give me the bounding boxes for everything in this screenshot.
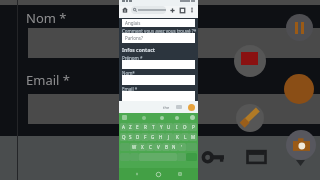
button[interactable]: Screenshot bbox=[286, 130, 316, 160]
button[interactable]: A bbox=[120, 123, 127, 131]
staticText: D bbox=[136, 134, 140, 140]
staticText: S bbox=[129, 134, 132, 140]
button[interactable]: Payment card bbox=[247, 150, 266, 164]
button[interactable]: P bbox=[189, 123, 197, 131]
button[interactable]: K bbox=[173, 133, 181, 141]
button[interactable]: U bbox=[165, 123, 173, 131]
button[interactable]: Parlons? bbox=[122, 33, 195, 43]
button[interactable]: J bbox=[165, 133, 173, 141]
button[interactable]: D bbox=[134, 133, 141, 141]
button[interactable]: G bbox=[149, 133, 157, 141]
staticText: T bbox=[152, 124, 155, 130]
staticText: G bbox=[151, 134, 155, 140]
button[interactable]: M bbox=[189, 133, 197, 141]
button[interactable]: Record bbox=[284, 74, 314, 104]
staticText: A bbox=[122, 124, 125, 130]
staticText: W bbox=[132, 144, 137, 150]
button[interactable]: R bbox=[141, 123, 149, 131]
staticText: M bbox=[191, 134, 196, 140]
staticText: Nom* bbox=[122, 70, 135, 76]
button[interactable]: B bbox=[162, 143, 170, 151]
button[interactable]: Back bbox=[135, 172, 139, 176]
staticText: ' bbox=[181, 144, 183, 150]
button[interactable]: Passwords bbox=[204, 150, 225, 164]
button[interactable]: Draw bbox=[236, 104, 264, 132]
button[interactable]: Tabs bbox=[179, 7, 186, 14]
button[interactable]: O bbox=[181, 123, 189, 131]
button[interactable]: Y bbox=[157, 123, 165, 131]
staticText: Nom * bbox=[26, 9, 67, 27]
staticText: O bbox=[183, 124, 187, 130]
staticText: K bbox=[176, 134, 179, 140]
staticText: Email * bbox=[26, 71, 70, 89]
staticText: H bbox=[159, 134, 163, 140]
staticText: N bbox=[172, 144, 176, 150]
staticText: Prénom * bbox=[122, 55, 143, 61]
staticText: B bbox=[165, 144, 168, 150]
staticText: I bbox=[176, 124, 178, 130]
button[interactable]: T bbox=[149, 123, 157, 131]
staticText: L bbox=[184, 134, 187, 140]
staticText: Email * bbox=[122, 86, 138, 92]
staticText: Y bbox=[160, 124, 163, 130]
staticText: Anglais bbox=[125, 20, 141, 26]
button[interactable]: Anglais bbox=[122, 19, 195, 27]
staticText: Comment vous avez vous trouvé ?* bbox=[122, 28, 197, 34]
button[interactable]: H bbox=[157, 133, 165, 141]
button[interactable]: E bbox=[134, 123, 141, 131]
staticText: E bbox=[136, 124, 139, 130]
button[interactable] bbox=[131, 6, 166, 14]
staticText: J bbox=[168, 134, 170, 140]
button[interactable]: C bbox=[146, 143, 154, 151]
staticText: C bbox=[149, 144, 152, 150]
button[interactable]: Q bbox=[120, 133, 127, 141]
button[interactable]: ' bbox=[178, 143, 186, 151]
staticText: P bbox=[192, 124, 195, 130]
button[interactable]: More options bbox=[189, 7, 195, 13]
staticText: Q bbox=[122, 134, 126, 140]
button[interactable]: N bbox=[170, 143, 178, 151]
staticText: Infos contact bbox=[122, 47, 155, 54]
button[interactable]: New tab bbox=[169, 7, 176, 14]
button[interactable]: V bbox=[154, 143, 162, 151]
button[interactable]: F bbox=[141, 133, 149, 141]
button[interactable]: Home bbox=[155, 171, 162, 178]
staticText: Parlons? bbox=[125, 35, 143, 41]
button[interactable]: Stop recording bbox=[234, 45, 266, 77]
button[interactable]: Recents bbox=[178, 172, 182, 176]
staticText: Z bbox=[129, 124, 132, 130]
button[interactable]: S bbox=[127, 133, 134, 141]
staticText: U bbox=[167, 124, 171, 130]
staticText: X bbox=[141, 144, 144, 150]
button[interactable]: L bbox=[181, 133, 189, 141]
staticText: the bbox=[163, 105, 170, 110]
staticText: V bbox=[157, 144, 160, 150]
button[interactable]: I bbox=[173, 123, 181, 131]
button[interactable]: Z bbox=[127, 123, 134, 131]
button[interactable]: Pause recording bbox=[286, 14, 313, 41]
button[interactable]: W bbox=[130, 143, 138, 151]
button[interactable]: Home bbox=[121, 6, 129, 14]
staticText: F bbox=[144, 134, 147, 140]
staticText: R bbox=[144, 124, 147, 130]
button[interactable]: X bbox=[138, 143, 146, 151]
